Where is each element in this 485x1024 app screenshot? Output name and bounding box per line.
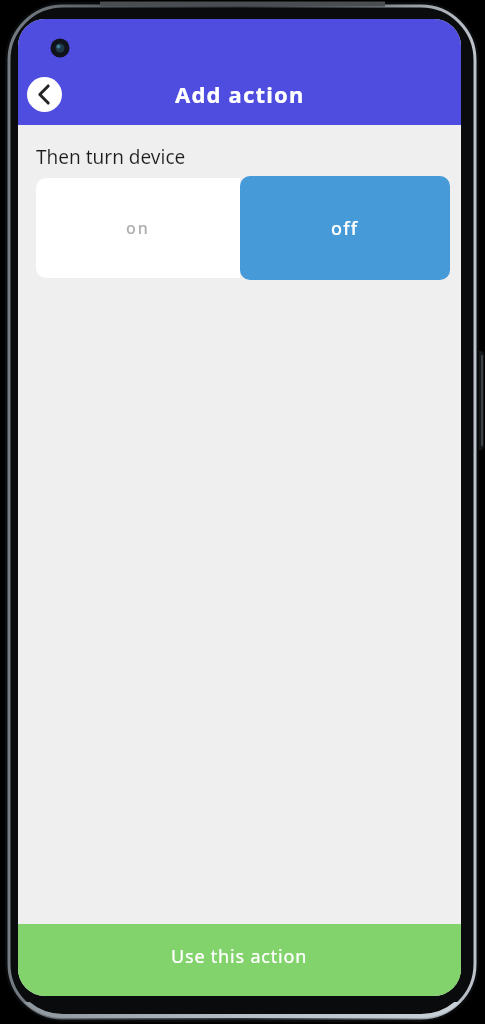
staticText: Then turn device — [36, 144, 186, 170]
button[interactable]: off — [240, 176, 450, 280]
staticText: Add action — [175, 79, 305, 109]
button[interactable]: Use this action — [18, 924, 461, 996]
staticText: Use this action — [171, 944, 308, 969]
staticText: on — [126, 217, 150, 239]
button[interactable] — [27, 77, 62, 112]
staticText: off — [331, 216, 359, 241]
button[interactable]: on — [36, 178, 240, 278]
